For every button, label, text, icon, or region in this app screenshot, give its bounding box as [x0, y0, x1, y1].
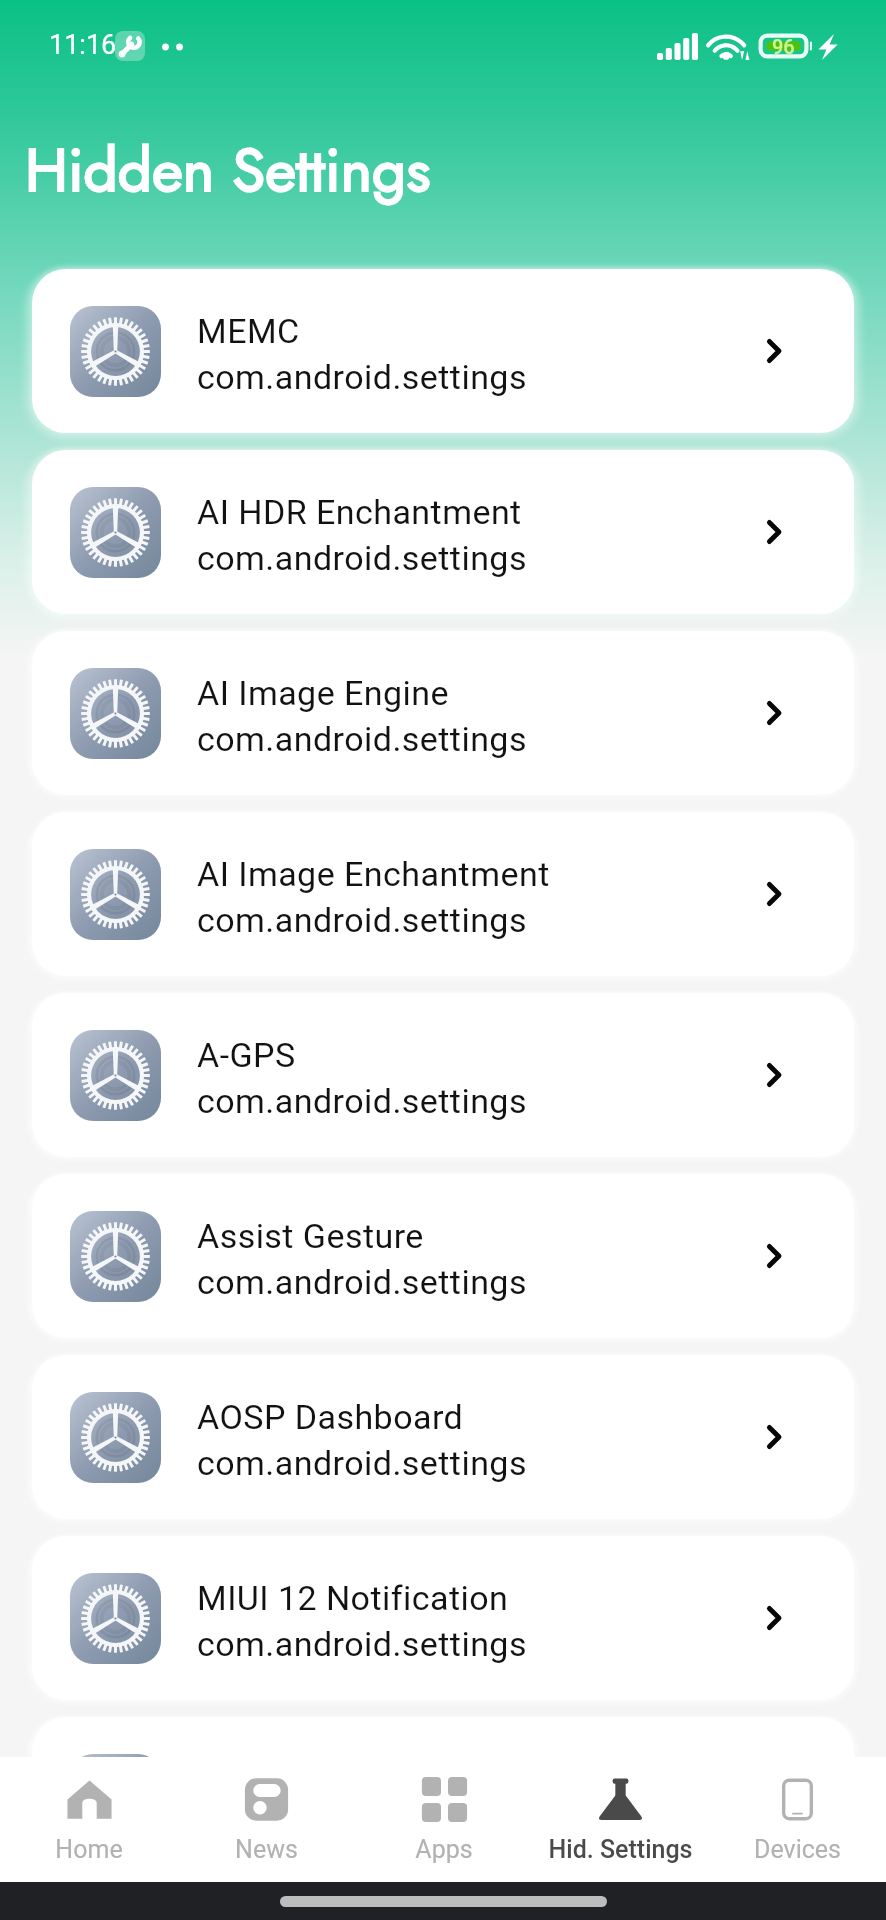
staticText: Hidden Settings — [25, 127, 431, 214]
button[interactable]: News — [178, 1757, 355, 1882]
staticText: 11:16 — [49, 29, 117, 61]
button[interactable]: Assist Gesture — [32, 1174, 854, 1338]
staticText: com.android.settings — [197, 1443, 527, 1483]
staticText: Hid. Settings — [548, 1835, 693, 1864]
staticText: Home — [55, 1835, 123, 1864]
staticText: com.android.settings — [197, 357, 527, 397]
button[interactable]: MIUI 12 Notification — [32, 1536, 854, 1700]
button[interactable]: A-GPS — [32, 993, 854, 1157]
staticText: com.android.settings — [197, 1081, 527, 1121]
button[interactable]: MEMC — [32, 269, 854, 433]
staticText: com.android.settings — [197, 1624, 527, 1664]
button[interactable]: AOSP Dashboard — [32, 1355, 854, 1519]
staticText: 96 — [772, 35, 795, 58]
button[interactable]: Apps — [355, 1757, 532, 1882]
button[interactable]: Home — [0, 1757, 178, 1882]
staticText: Apps — [415, 1835, 473, 1864]
staticText: AI Image Engine — [197, 673, 449, 713]
staticText: AI Image Enchantment — [197, 854, 550, 894]
staticText: com.android.settings — [197, 900, 527, 940]
staticText: com.android.settings — [197, 719, 527, 759]
staticText: A-GPS — [197, 1035, 296, 1075]
staticText: com.android.settings — [197, 1262, 527, 1302]
staticText: MIUI 12 Notification — [197, 1578, 509, 1618]
staticText: News — [235, 1835, 298, 1864]
staticText: Devices — [754, 1835, 841, 1864]
staticText: Assist Gesture — [197, 1216, 424, 1256]
button[interactable]: AI HDR Enchantment — [32, 450, 854, 614]
staticText: MEMC — [197, 311, 300, 351]
button[interactable]: Devices — [709, 1757, 886, 1882]
button[interactable]: AI Image Engine — [32, 631, 854, 795]
staticText: AI HDR Enchantment — [197, 492, 522, 532]
staticText: AOSP Dashboard — [197, 1397, 464, 1437]
staticText: com.android.settings — [197, 1805, 527, 1845]
button[interactable]: Hidden Settings — [532, 1757, 709, 1882]
button[interactable]: Network Settings — [32, 1717, 854, 1881]
staticText: Network Settings — [197, 1759, 464, 1799]
button[interactable]: AI Image Enchantment — [32, 812, 854, 976]
staticText: com.android.settings — [197, 538, 527, 578]
